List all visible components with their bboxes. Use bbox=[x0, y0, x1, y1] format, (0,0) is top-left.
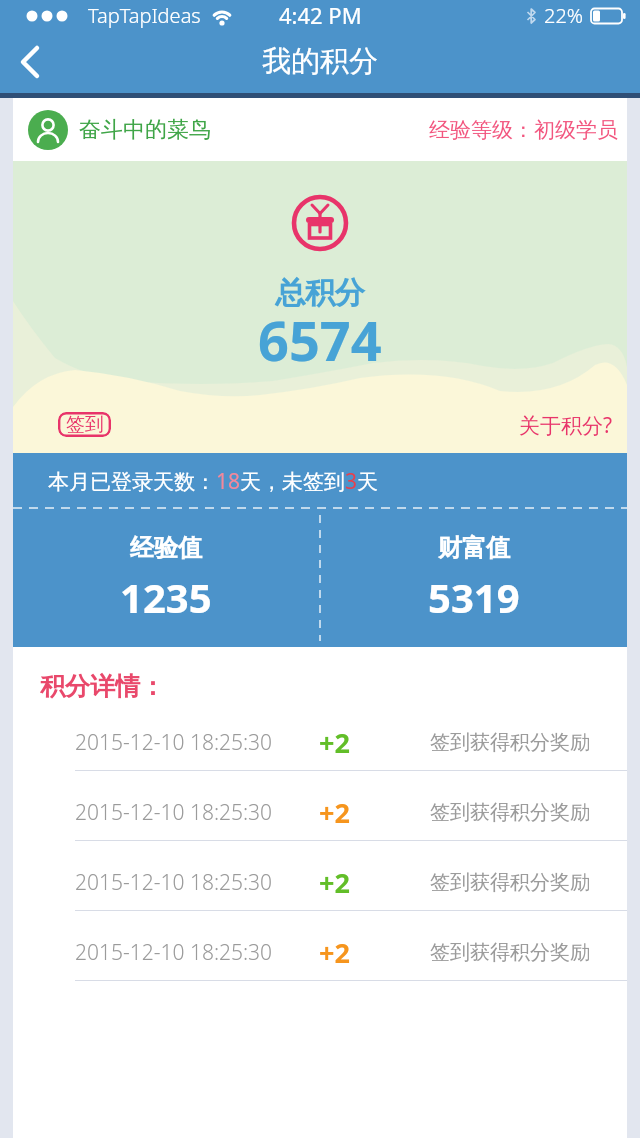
staticText: 2015-12-10 18:25:30 bbox=[75, 798, 273, 827]
staticText: 签到获得积分奖励 bbox=[430, 870, 590, 895]
staticText: +2 bbox=[319, 934, 350, 971]
staticText: 关于积分? bbox=[519, 411, 613, 440]
staticText: 我的积分 bbox=[262, 43, 378, 80]
staticText: 签到获得积分奖励 bbox=[430, 800, 590, 825]
staticText: 签到获得积分奖励 bbox=[430, 940, 590, 965]
staticText: TapTapIdeas bbox=[88, 2, 201, 29]
staticText: +2 bbox=[319, 864, 350, 901]
button[interactable]: 2015-12-10 18:25:30 bbox=[13, 911, 627, 981]
staticText: 2015-12-10 18:25:30 bbox=[75, 868, 273, 897]
button[interactable] bbox=[10, 42, 50, 82]
staticText: 经验等级：初级学员 bbox=[429, 117, 618, 143]
button[interactable]: 2015-12-10 18:25:30 bbox=[13, 701, 627, 771]
staticText: 22% bbox=[544, 2, 584, 29]
button[interactable]: 关于积分? bbox=[519, 411, 613, 440]
staticText: 签到 bbox=[66, 413, 104, 437]
staticText: 2015-12-10 18:25:30 bbox=[75, 938, 273, 967]
staticText: 奋斗中的菜鸟 bbox=[79, 116, 211, 144]
staticText: 财富值 bbox=[438, 533, 510, 563]
button[interactable]: 奋斗中的菜鸟 bbox=[13, 98, 627, 161]
button[interactable]: 签到 bbox=[58, 412, 111, 437]
button[interactable]: 2015-12-10 18:25:30 bbox=[13, 841, 627, 911]
staticText: 总积分 bbox=[275, 274, 365, 312]
staticText: 积分详情： bbox=[40, 671, 165, 701]
button[interactable]: 2015-12-10 18:25:30 bbox=[13, 771, 627, 841]
staticText: +2 bbox=[319, 794, 350, 831]
staticText: 本月已登录天数：18天，未签到3天 bbox=[48, 467, 379, 496]
staticText: 5319 bbox=[428, 570, 520, 624]
staticText: +2 bbox=[319, 724, 350, 761]
staticText: 6574 bbox=[258, 303, 382, 377]
staticText: 2015-12-10 18:25:30 bbox=[75, 728, 273, 757]
staticText: 1235 bbox=[120, 570, 212, 624]
staticText: 经验值 bbox=[130, 533, 202, 563]
staticText: 签到获得积分奖励 bbox=[430, 730, 590, 755]
staticText: 4:42 PM bbox=[279, 0, 362, 30]
